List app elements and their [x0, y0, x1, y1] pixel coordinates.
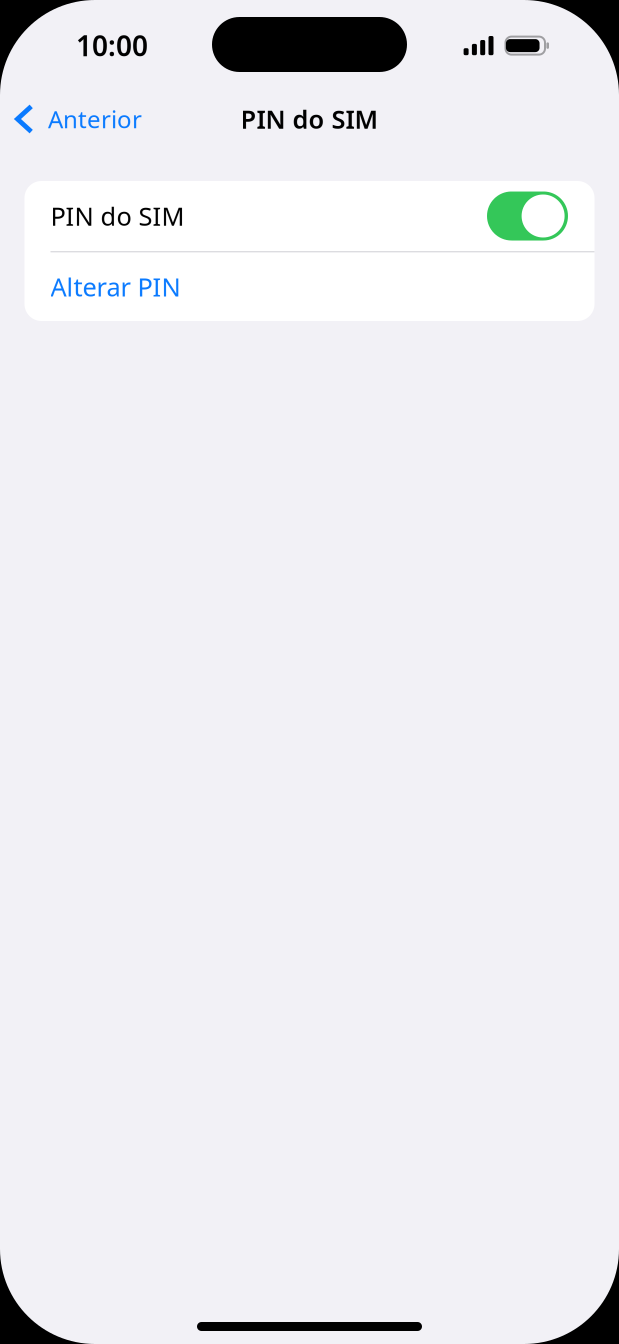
staticText: PIN do SIM: [240, 102, 378, 136]
staticText: Alterar PIN: [50, 270, 180, 303]
staticText: 10:00: [76, 27, 148, 64]
button[interactable]: Anterior: [0, 88, 156, 150]
staticText: Anterior: [48, 103, 142, 135]
button[interactable]: PIN do SIM: [24, 181, 594, 251]
button[interactable]: Alterar PIN: [24, 252, 594, 321]
staticText: PIN do SIM: [50, 199, 184, 233]
